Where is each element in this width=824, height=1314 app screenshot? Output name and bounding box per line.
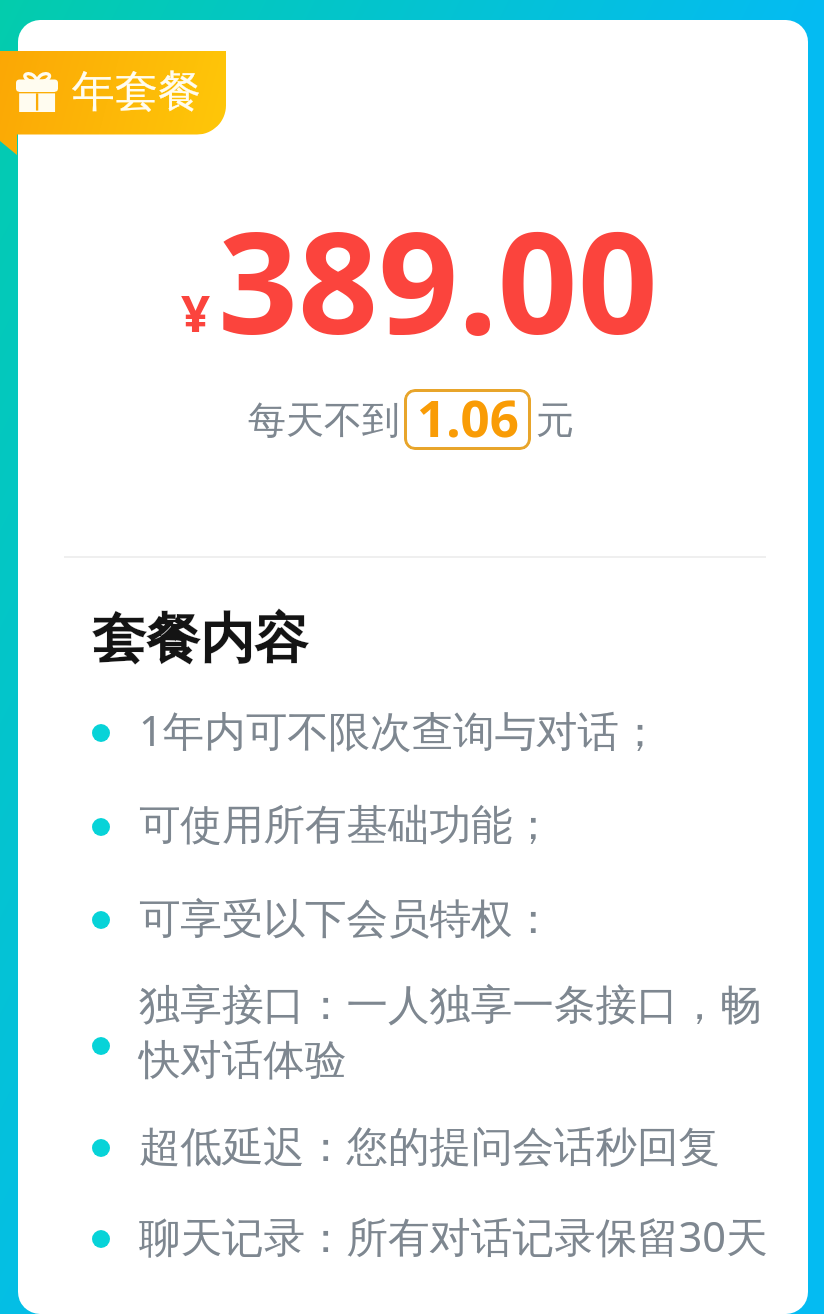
button[interactable] [74, 697, 792, 763]
staticText: 独享接口：一人独享一条接口，畅快对话体验 [139, 979, 791, 1086]
staticText: ¥ [181, 277, 211, 346]
staticText: 每天不到 [248, 396, 400, 444]
staticText: 年套餐 [72, 65, 201, 119]
staticText: 1年内可不限次查询与对话； [139, 702, 791, 759]
staticText: 可享受以下会员特权： [139, 893, 791, 945]
button[interactable] [74, 794, 792, 860]
staticText: 套餐内容 [92, 605, 308, 673]
other: Gift [16, 71, 58, 112]
staticText: 1.06 [417, 389, 519, 443]
button[interactable]: 年套餐 [0, 51, 226, 135]
button[interactable] [74, 1203, 792, 1269]
staticText: 元 [536, 396, 574, 444]
button[interactable]: 1.06 [404, 389, 531, 450]
staticText: 超低延迟：您的提问会话秒回复 [139, 1121, 791, 1173]
button[interactable] [74, 1116, 792, 1182]
button[interactable] [74, 974, 792, 1094]
staticText: 可使用所有基础功能； [139, 799, 791, 851]
staticText: 389.00 [218, 184, 658, 375]
button[interactable] [74, 888, 792, 954]
staticText: 聊天记录：所有对话记录保留30天 [139, 1208, 791, 1265]
